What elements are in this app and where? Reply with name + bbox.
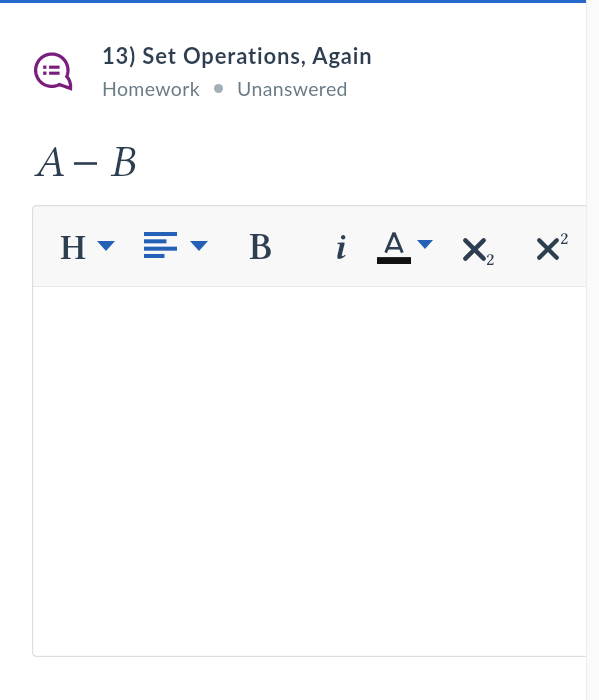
- button[interactable]: Superscript: [529, 221, 577, 269]
- staticText: i: [333, 225, 346, 268]
- staticText: Unanswered: [237, 77, 348, 100]
- button[interactable]: Italic: [319, 221, 359, 269]
- staticText: 2: [560, 228, 569, 249]
- staticText: B: [249, 225, 273, 268]
- staticText: H: [60, 227, 87, 268]
- button[interactable]: Heading: [51, 221, 119, 269]
- staticText: B: [110, 136, 136, 187]
- staticText: A: [34, 136, 65, 187]
- staticText: Homework: [102, 77, 200, 100]
- staticText: 13) Set Operations, Again: [102, 42, 373, 68]
- button[interactable]: Align: [137, 221, 215, 269]
- button[interactable]: Question type: [34, 52, 74, 92]
- button[interactable]: Text colour: [372, 221, 438, 269]
- button[interactable]: Bold: [237, 221, 285, 269]
- button[interactable]: Subscript: [456, 221, 504, 269]
- staticText: 2: [486, 249, 495, 270]
